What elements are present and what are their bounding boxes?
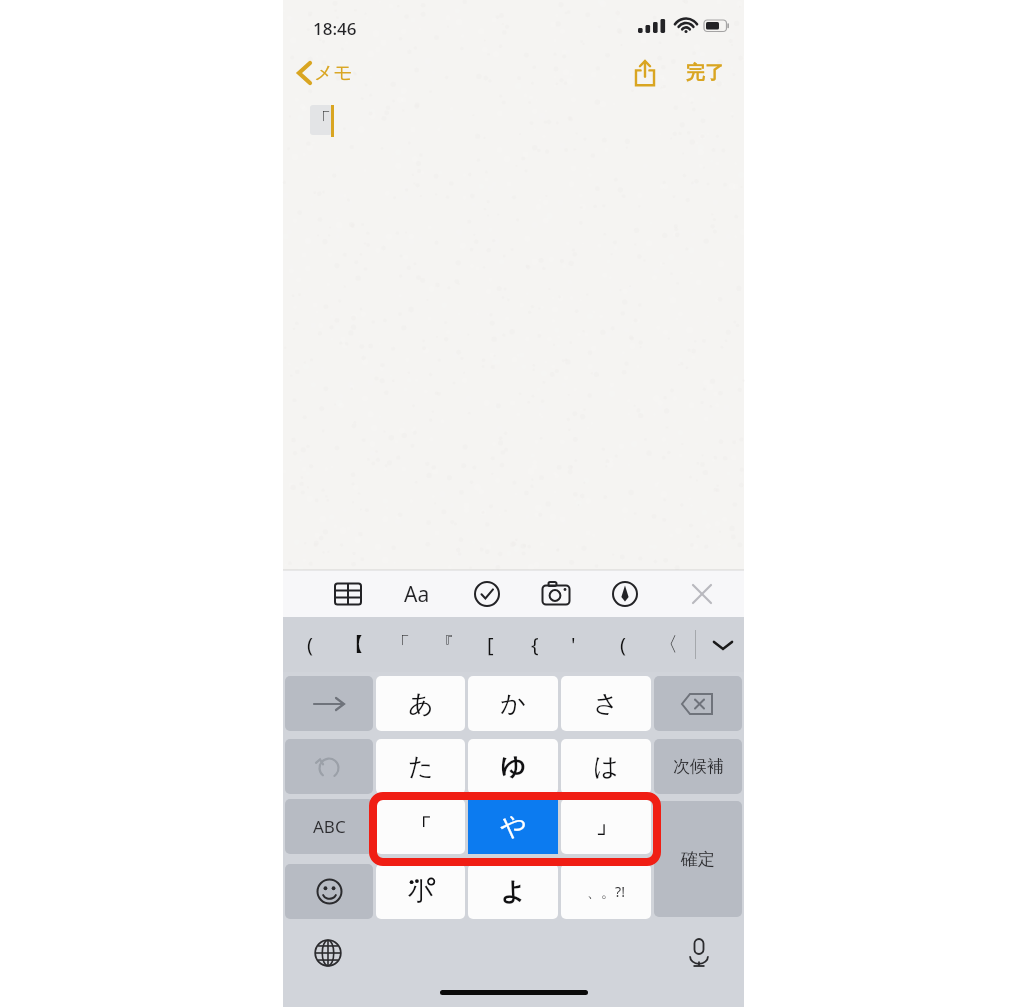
button[interactable]: 【 bbox=[334, 617, 374, 672]
button[interactable]: Change keyboard bbox=[305, 930, 351, 976]
staticText: さ bbox=[593, 688, 619, 719]
button[interactable]: よ bbox=[468, 864, 558, 919]
staticText: 〈 bbox=[658, 632, 678, 657]
button[interactable]: 次候補 bbox=[654, 739, 742, 794]
button[interactable]: た bbox=[376, 739, 465, 794]
button[interactable]: 『 bbox=[424, 617, 464, 672]
staticText: や bbox=[500, 810, 527, 843]
button[interactable]: 小 bbox=[376, 864, 465, 919]
button[interactable]: Close bbox=[680, 572, 724, 616]
staticText: 「 bbox=[411, 814, 431, 839]
staticText: 『 bbox=[434, 632, 454, 657]
staticText: Aa bbox=[404, 580, 430, 609]
button[interactable]: 完了 bbox=[675, 52, 735, 94]
staticText: た bbox=[408, 751, 434, 782]
button[interactable]: 「 bbox=[380, 617, 420, 672]
staticText: よ bbox=[500, 876, 526, 907]
staticText: 小 bbox=[408, 876, 433, 907]
staticText: あ bbox=[408, 688, 434, 719]
button[interactable]: 〈 bbox=[648, 617, 688, 672]
staticText: 確定 bbox=[681, 849, 715, 870]
staticText: メモ bbox=[314, 61, 353, 85]
button[interactable]: ( bbox=[603, 617, 643, 672]
button[interactable]: Markup bbox=[603, 572, 647, 616]
staticText: { bbox=[531, 631, 539, 658]
button[interactable]: Emoji bbox=[285, 864, 373, 919]
staticText: ( bbox=[307, 631, 313, 658]
button[interactable]: メモ bbox=[297, 52, 353, 94]
button[interactable]: 」 bbox=[561, 799, 651, 854]
button[interactable]: や bbox=[468, 799, 558, 854]
staticText: は bbox=[593, 751, 619, 782]
button[interactable]: Delete bbox=[654, 676, 742, 731]
button[interactable]: は bbox=[561, 739, 651, 794]
button[interactable]: { bbox=[515, 617, 555, 672]
button[interactable]: 確定 bbox=[654, 801, 742, 917]
button[interactable]: Dictation bbox=[676, 930, 722, 976]
button[interactable]: Checklist bbox=[465, 572, 509, 616]
button[interactable]: Aa bbox=[395, 572, 439, 616]
staticText: 完了 bbox=[686, 61, 724, 85]
staticText: 「 bbox=[390, 632, 410, 657]
staticText: ( bbox=[620, 631, 626, 658]
button[interactable]: ' bbox=[553, 617, 593, 672]
button[interactable]: 、。?! bbox=[561, 864, 651, 919]
button[interactable]: Share bbox=[623, 52, 667, 94]
staticText: 次候補 bbox=[673, 756, 724, 777]
staticText: ' bbox=[571, 631, 576, 658]
button[interactable]: Collapse suggestions bbox=[701, 617, 744, 672]
button[interactable]: ( bbox=[290, 617, 330, 672]
button[interactable]: 「 bbox=[376, 799, 465, 854]
button[interactable]: Table bbox=[326, 572, 370, 616]
button[interactable]: ABC bbox=[285, 799, 373, 854]
button[interactable]: か bbox=[468, 676, 558, 731]
button[interactable]: [ bbox=[470, 617, 510, 672]
staticText: 「 bbox=[311, 108, 331, 133]
staticText: 18:46 bbox=[313, 17, 357, 40]
button[interactable]: さ bbox=[561, 676, 651, 731]
staticText: 【 bbox=[344, 632, 364, 657]
staticText: ゆ bbox=[500, 751, 526, 782]
staticText: ABC bbox=[313, 815, 346, 838]
staticText: か bbox=[500, 688, 526, 719]
staticText: 、。?! bbox=[587, 882, 625, 901]
button[interactable]: Move cursor right bbox=[285, 676, 373, 731]
button[interactable]: Undo bbox=[285, 739, 373, 794]
button[interactable]: ゆ bbox=[468, 739, 558, 794]
staticText: [ bbox=[487, 631, 494, 658]
button[interactable]: あ bbox=[376, 676, 465, 731]
staticText: 」 bbox=[596, 814, 616, 839]
button[interactable]: Camera bbox=[534, 572, 578, 616]
